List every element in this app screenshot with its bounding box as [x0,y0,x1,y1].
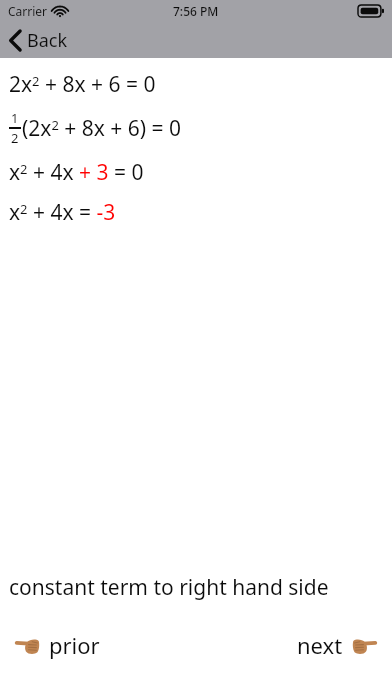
button[interactable]: next [283,624,392,666]
staticText: 2 [11,129,19,147]
staticText: 1 [11,109,19,127]
staticText: x2 + 4x = -3 [9,198,116,227]
staticText: prior [49,630,100,660]
staticText: next [297,630,343,660]
staticText: 2x2 + 8x + 6 = 0 [9,70,156,99]
staticText: (2x2 + 8x + 6) = 0 [22,114,182,143]
staticText: Carrier [8,3,48,19]
other: Previous [14,635,40,655]
button[interactable]: Back [0,24,80,57]
staticText: 7:56 PM [173,3,219,19]
staticText: Back [27,28,68,53]
staticText: x2 + 4x + 3 = 0 [9,158,144,187]
button[interactable]: Previous [0,624,114,666]
other: Next [352,635,378,655]
staticText: constant term to right hand side [9,573,329,602]
